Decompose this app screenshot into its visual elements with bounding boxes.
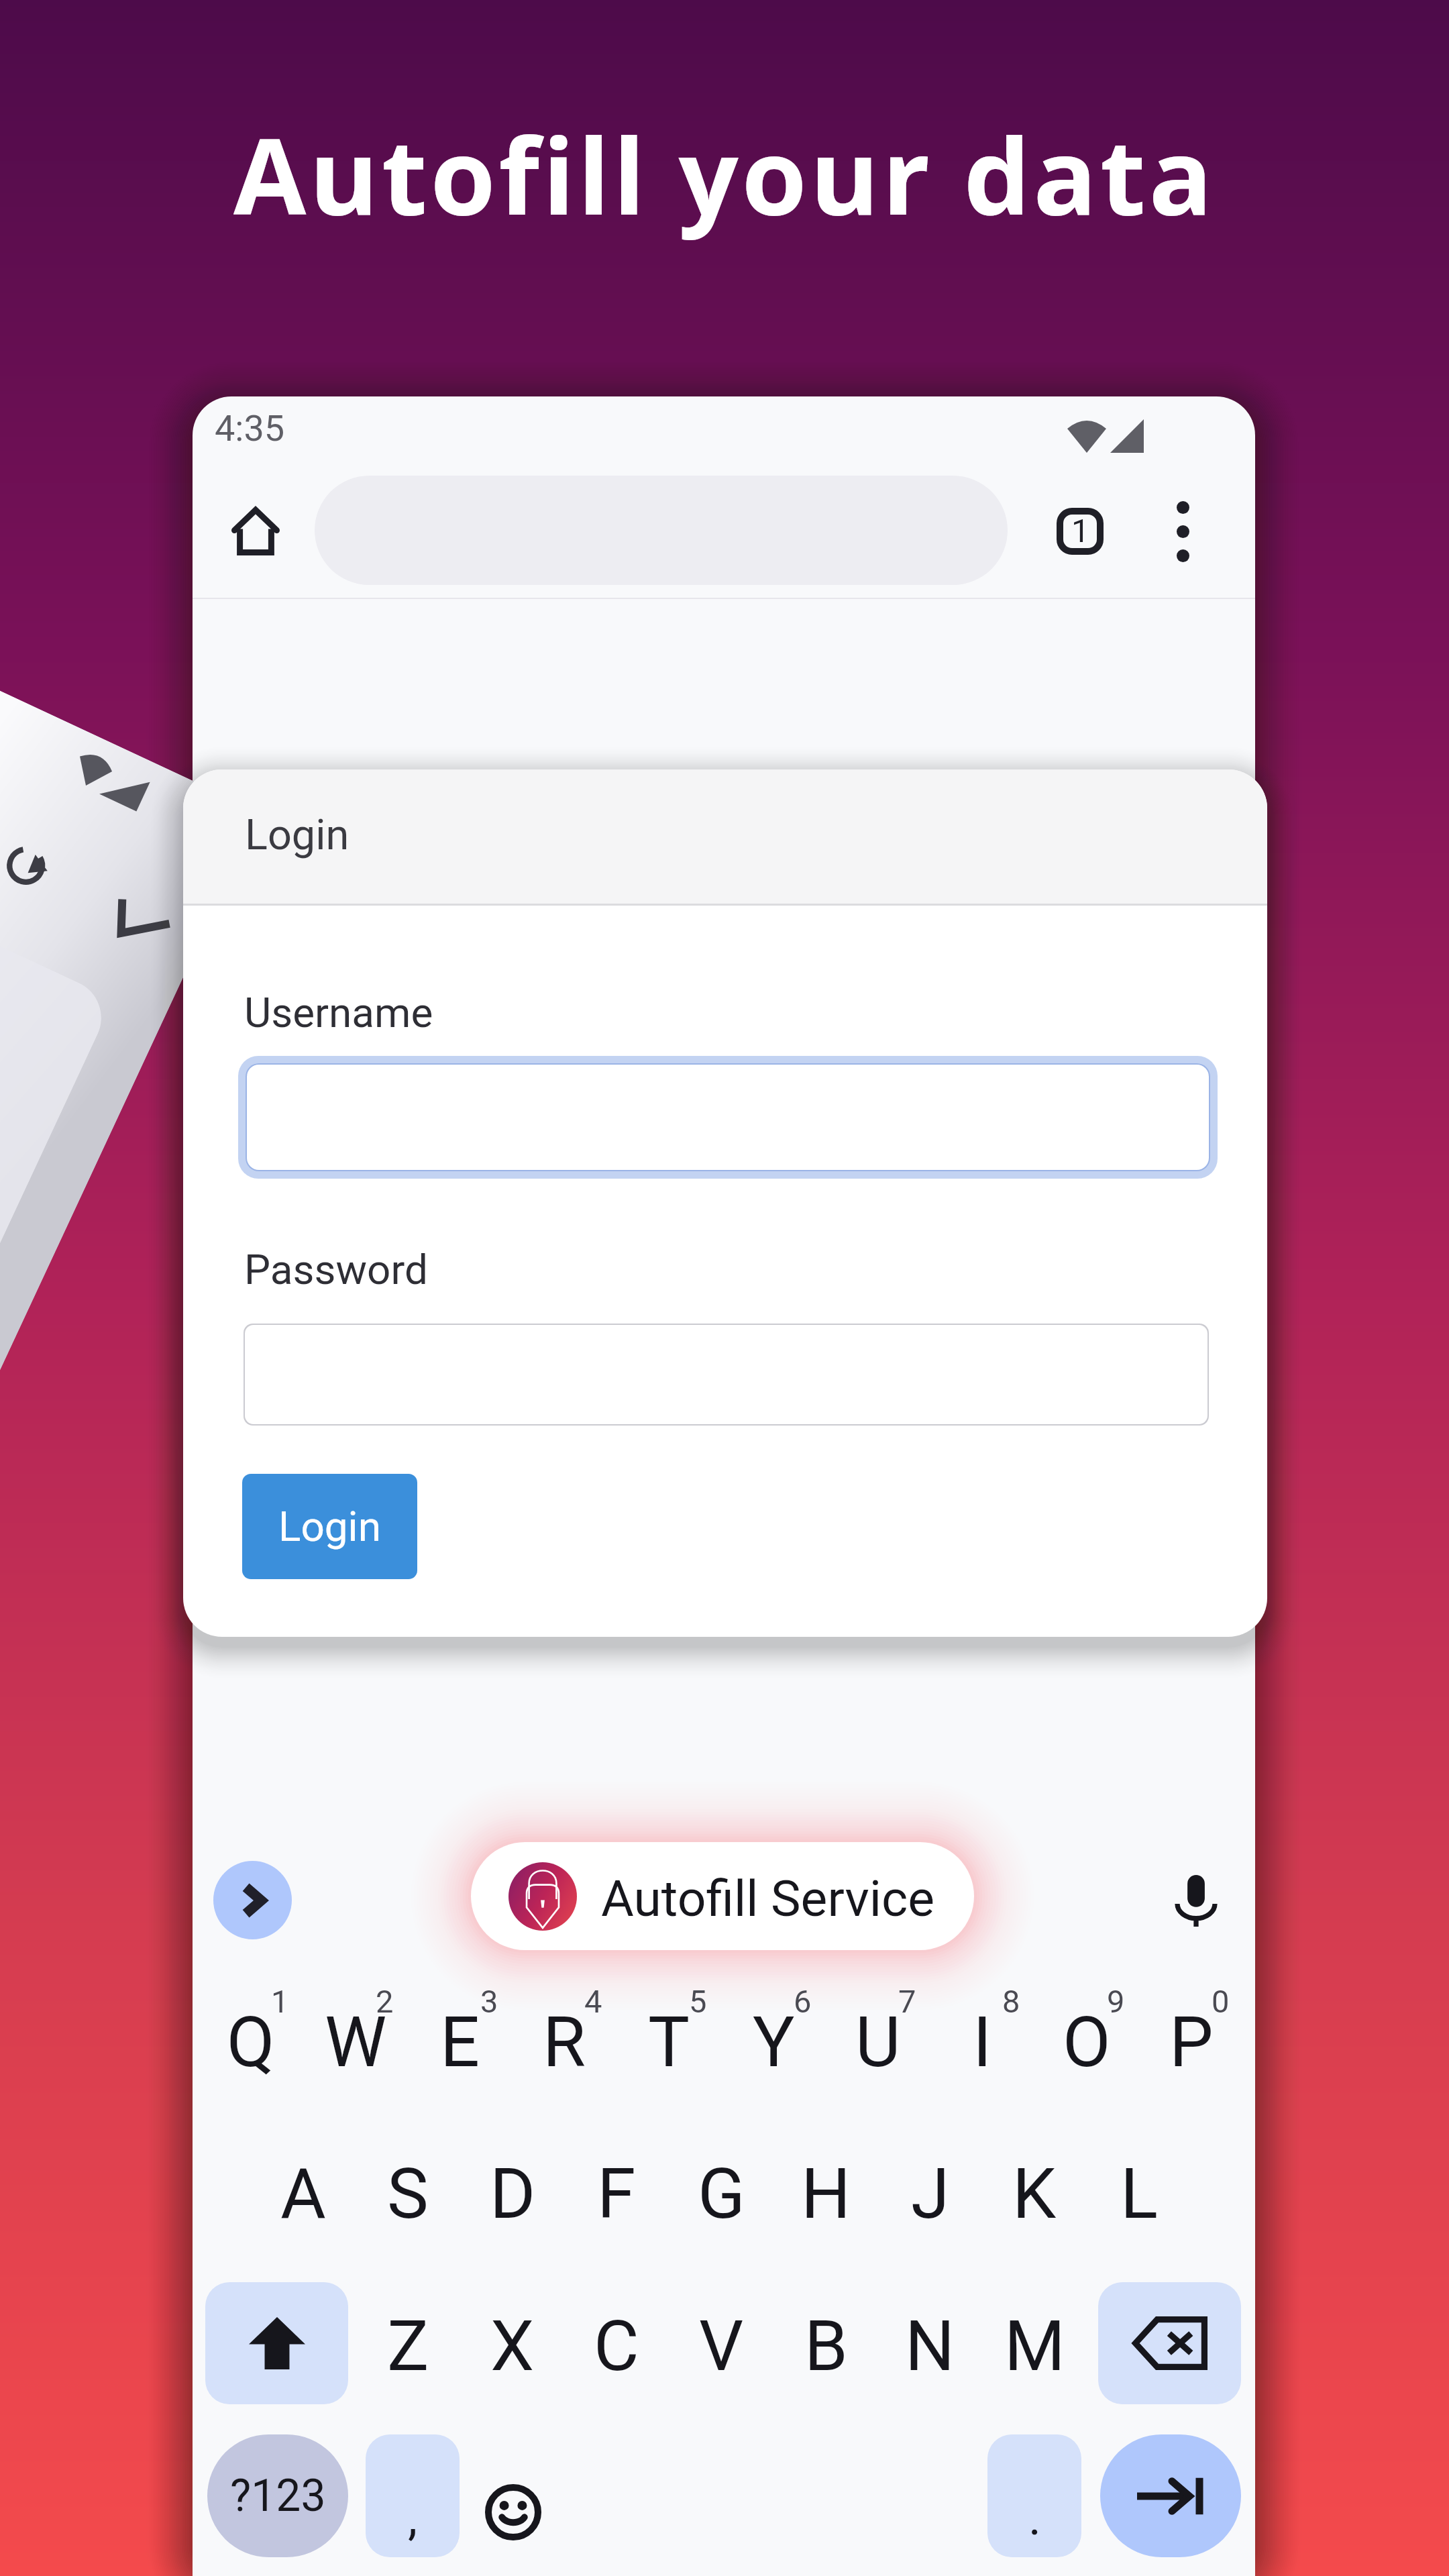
staticText: V <box>699 2306 744 2387</box>
staticText: O <box>1063 2002 1111 2084</box>
button[interactable]: A <box>250 2127 356 2261</box>
staticText: Q <box>227 2002 275 2084</box>
staticText: 8 <box>1002 1983 1020 2020</box>
staticText: H <box>801 2153 851 2235</box>
staticText: J <box>911 2153 950 2235</box>
button[interactable]: D <box>460 2127 566 2261</box>
staticText: 4 <box>584 1983 602 2020</box>
staticText: M <box>1004 2306 1065 2387</box>
button[interactable]: More options <box>1145 494 1220 569</box>
button[interactable]: Next field <box>1100 2434 1241 2557</box>
button[interactable]: J <box>877 2127 983 2261</box>
staticText: T <box>648 2002 690 2084</box>
staticText: 1 <box>1071 512 1089 549</box>
staticText: Login <box>278 1502 381 1551</box>
staticText: 4:35 <box>215 407 285 449</box>
button[interactable]: Z <box>355 2279 461 2414</box>
button[interactable]: Shift <box>205 2282 348 2404</box>
button[interactable]: . <box>987 2434 1081 2557</box>
button[interactable]: M <box>981 2279 1087 2414</box>
staticText: K <box>1012 2153 1057 2235</box>
staticText: Autofill your data <box>233 102 1216 246</box>
staticText: G <box>698 2153 745 2235</box>
button[interactable]: , <box>366 2434 460 2557</box>
staticText: U <box>855 2002 901 2084</box>
button[interactable]: Emoji <box>470 2469 557 2556</box>
staticText: N <box>905 2306 955 2387</box>
staticText: 6 <box>794 1983 812 2020</box>
staticText: Z <box>387 2306 429 2387</box>
staticText: D <box>490 2153 536 2235</box>
staticText: R <box>543 2002 586 2084</box>
staticText: 1 <box>271 1983 289 2020</box>
button[interactable]: More suggestions <box>213 1861 292 1939</box>
staticText: L <box>1120 2153 1159 2235</box>
staticText: B <box>804 2306 848 2387</box>
button[interactable]: G <box>668 2127 774 2261</box>
button[interactable]: T <box>616 1976 722 2110</box>
button[interactable]: B <box>773 2279 879 2414</box>
staticText: 0 <box>1212 1983 1230 2020</box>
button[interactable]: W <box>303 1976 409 2110</box>
button[interactable]: O <box>1034 1976 1140 2110</box>
staticText: 5 <box>689 1983 707 2020</box>
staticText: I <box>973 2002 992 2084</box>
button[interactable]: Autofill Service <box>471 1842 974 1950</box>
staticText: W <box>325 2002 387 2084</box>
button[interactable]: F <box>563 2127 669 2261</box>
button[interactable]: L <box>1086 2127 1192 2261</box>
button[interactable]: I <box>929 1976 1035 2110</box>
staticText: E <box>440 2002 480 2084</box>
staticText: A <box>280 2153 326 2235</box>
staticText: 3 <box>480 1983 498 2020</box>
button[interactable]: Login <box>242 1474 417 1579</box>
button[interactable]: N <box>877 2279 983 2414</box>
staticText: ?123 <box>230 2470 326 2522</box>
staticText: Password <box>244 1245 428 1294</box>
staticText: , <box>408 2489 418 2546</box>
staticText: . <box>1028 2489 1041 2546</box>
button[interactable]: Y <box>720 1976 826 2110</box>
button[interactable]: E <box>407 1976 513 2110</box>
staticText: P <box>1169 2002 1214 2084</box>
staticText: Login <box>245 810 350 860</box>
button[interactable]: C <box>563 2279 669 2414</box>
button[interactable]: Q <box>198 1976 304 2110</box>
button[interactable]: ?123 <box>207 2434 348 2557</box>
button[interactable]: Voice input <box>1157 1862 1235 1939</box>
button[interactable]: H <box>773 2127 879 2261</box>
staticText: F <box>597 2153 636 2235</box>
staticText: 2 <box>376 1983 394 2020</box>
staticText: S <box>387 2153 429 2235</box>
button[interactable]: V <box>668 2279 774 2414</box>
button[interactable]: Home <box>218 494 293 569</box>
staticText: Autofill Service <box>601 1869 935 1928</box>
button[interactable]: K <box>981 2127 1087 2261</box>
button[interactable]: Tabs <box>1042 494 1118 569</box>
button[interactable]: P <box>1138 1976 1244 2110</box>
button[interactable]: U <box>825 1976 931 2110</box>
button[interactable]: X <box>460 2279 566 2414</box>
staticText: X <box>490 2306 535 2387</box>
button[interactable]: S <box>355 2127 461 2261</box>
staticText: 7 <box>898 1983 916 2020</box>
staticText: Username <box>244 988 433 1037</box>
staticText: C <box>594 2306 639 2387</box>
button[interactable]: Backspace <box>1098 2282 1241 2404</box>
staticText: Y <box>753 2002 795 2084</box>
staticText: 9 <box>1107 1983 1125 2020</box>
button[interactable]: R <box>511 1976 617 2110</box>
